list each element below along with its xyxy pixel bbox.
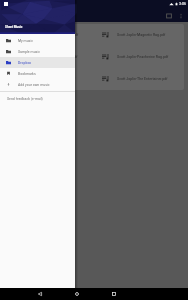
staticText: Scott Joplin-The Entertainer.pdf — [117, 77, 168, 81]
staticText: Sheet Music — [5, 25, 23, 29]
staticText: Scott Joplin-Maple Leaf Rag.pdf — [27, 33, 79, 37]
button[interactable]: My music — [0, 35, 75, 46]
staticText: My music — [18, 39, 34, 43]
button[interactable]: Scott Joplin-Pine Apple Rag.pdf — [4, 46, 94, 68]
button[interactable]: Bookmarks — [0, 68, 75, 79]
button[interactable]: Send feedback (e-mail) — [0, 92, 75, 105]
staticText: 3:06 — [179, 2, 186, 6]
button[interactable]: Scott Joplin-The Entertainer.pdf — [94, 68, 184, 90]
button[interactable]: Scott Joplin-Peacherine Rag.pdf — [94, 46, 184, 68]
button[interactable]: Scott Joplin-Gladiolus Rag.pdf — [4, 68, 94, 90]
staticText: Send feedback (e-mail) — [7, 97, 43, 101]
staticText: Add your own music — [18, 83, 50, 87]
button[interactable]: Dropbox — [0, 57, 75, 68]
staticText: Bookmarks — [18, 72, 36, 76]
staticText: Dropbox — [18, 61, 32, 65]
button[interactable]: More options — [175, 10, 186, 21]
button[interactable]: Recents — [112, 288, 149, 300]
staticText: Scott Joplin-Magnetic Rag.pdf — [117, 33, 166, 37]
button[interactable]: Sample music — [0, 46, 75, 57]
button[interactable]: Bookmarks — [162, 9, 175, 22]
button[interactable]: Back — [38, 288, 75, 300]
staticText: Sample music — [18, 50, 41, 54]
staticText: Scott Joplin-Gladiolus Rag.pdf — [27, 77, 76, 81]
button[interactable]: Add your own music — [0, 79, 75, 90]
button[interactable]: Scott Joplin-Magnetic Rag.pdf — [94, 24, 184, 46]
staticText: Scott Joplin-Peacherine Rag.pdf — [117, 55, 169, 59]
button[interactable]: Scott Joplin-Maple Leaf Rag.pdf — [4, 24, 94, 46]
staticText: Scott Joplin-Pine Apple Rag.pdf — [27, 55, 78, 59]
button[interactable]: Home — [75, 288, 112, 300]
